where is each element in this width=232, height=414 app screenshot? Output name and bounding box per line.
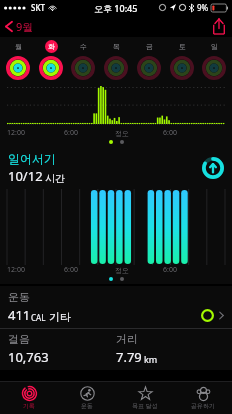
staticText: 6:00 xyxy=(163,265,177,275)
staticText: 운동 xyxy=(8,290,30,304)
staticText: 기록 xyxy=(23,402,35,410)
staticText: 목 xyxy=(113,42,120,51)
staticText: 12:00 xyxy=(7,265,25,275)
staticText: 걸음 xyxy=(8,332,30,346)
staticText: 일 xyxy=(211,42,218,51)
staticText: 6:00 xyxy=(64,128,78,138)
button[interactable] xyxy=(36,55,66,81)
staticText: 공유하기 xyxy=(191,402,215,410)
button[interactable]: 운동 xyxy=(0,286,232,328)
staticText: 정오 xyxy=(115,129,129,138)
button[interactable]: 일어서기 xyxy=(0,146,232,284)
staticText: 거리 xyxy=(116,332,138,346)
button[interactable]: 공유 xyxy=(206,16,232,36)
staticText: 7.79 xyxy=(116,348,142,366)
staticText: 일어서기 xyxy=(8,151,56,166)
staticText: 9% xyxy=(197,2,209,13)
staticText: 시간 xyxy=(45,172,65,185)
staticText: 월 xyxy=(15,42,22,51)
staticText: 411 xyxy=(8,306,31,324)
button[interactable]: 운동 xyxy=(58,382,116,414)
staticText: 오후 10:45 xyxy=(94,2,138,14)
staticText: 금 xyxy=(146,42,153,51)
button[interactable] xyxy=(199,55,229,81)
staticText: 정오 xyxy=(115,266,129,275)
staticText: 6:00 xyxy=(64,265,78,275)
button[interactable] xyxy=(167,55,197,81)
staticText: km xyxy=(144,353,158,365)
button[interactable]: 9월 xyxy=(0,16,42,37)
staticText: 수 xyxy=(80,42,87,51)
staticText: 10/12 xyxy=(8,167,43,185)
button[interactable]: 목표 달성 xyxy=(116,382,174,414)
staticText: 화 xyxy=(48,42,55,51)
staticText: 12:00 xyxy=(7,128,25,138)
button[interactable]: 걸음 xyxy=(8,332,116,366)
staticText: 목표 달성 xyxy=(132,402,158,410)
button[interactable]: 거리 xyxy=(116,332,224,366)
staticText: 토 xyxy=(179,42,186,51)
button[interactable] xyxy=(101,55,131,81)
staticText: SKT xyxy=(31,2,45,13)
other: 일어서기 링 xyxy=(202,157,224,179)
staticText: 운동 xyxy=(81,402,93,410)
button[interactable] xyxy=(134,55,164,81)
button[interactable] xyxy=(68,55,98,81)
button[interactable]: 공유하기 xyxy=(174,382,232,414)
button[interactable]: 기록 xyxy=(0,382,58,414)
staticText: 9월 xyxy=(16,19,34,34)
button[interactable] xyxy=(3,55,33,81)
staticText: 10,763 xyxy=(8,348,49,366)
staticText: 기타 xyxy=(49,310,71,324)
staticText: CAL xyxy=(31,312,46,323)
staticText: 6:00 xyxy=(163,128,177,138)
